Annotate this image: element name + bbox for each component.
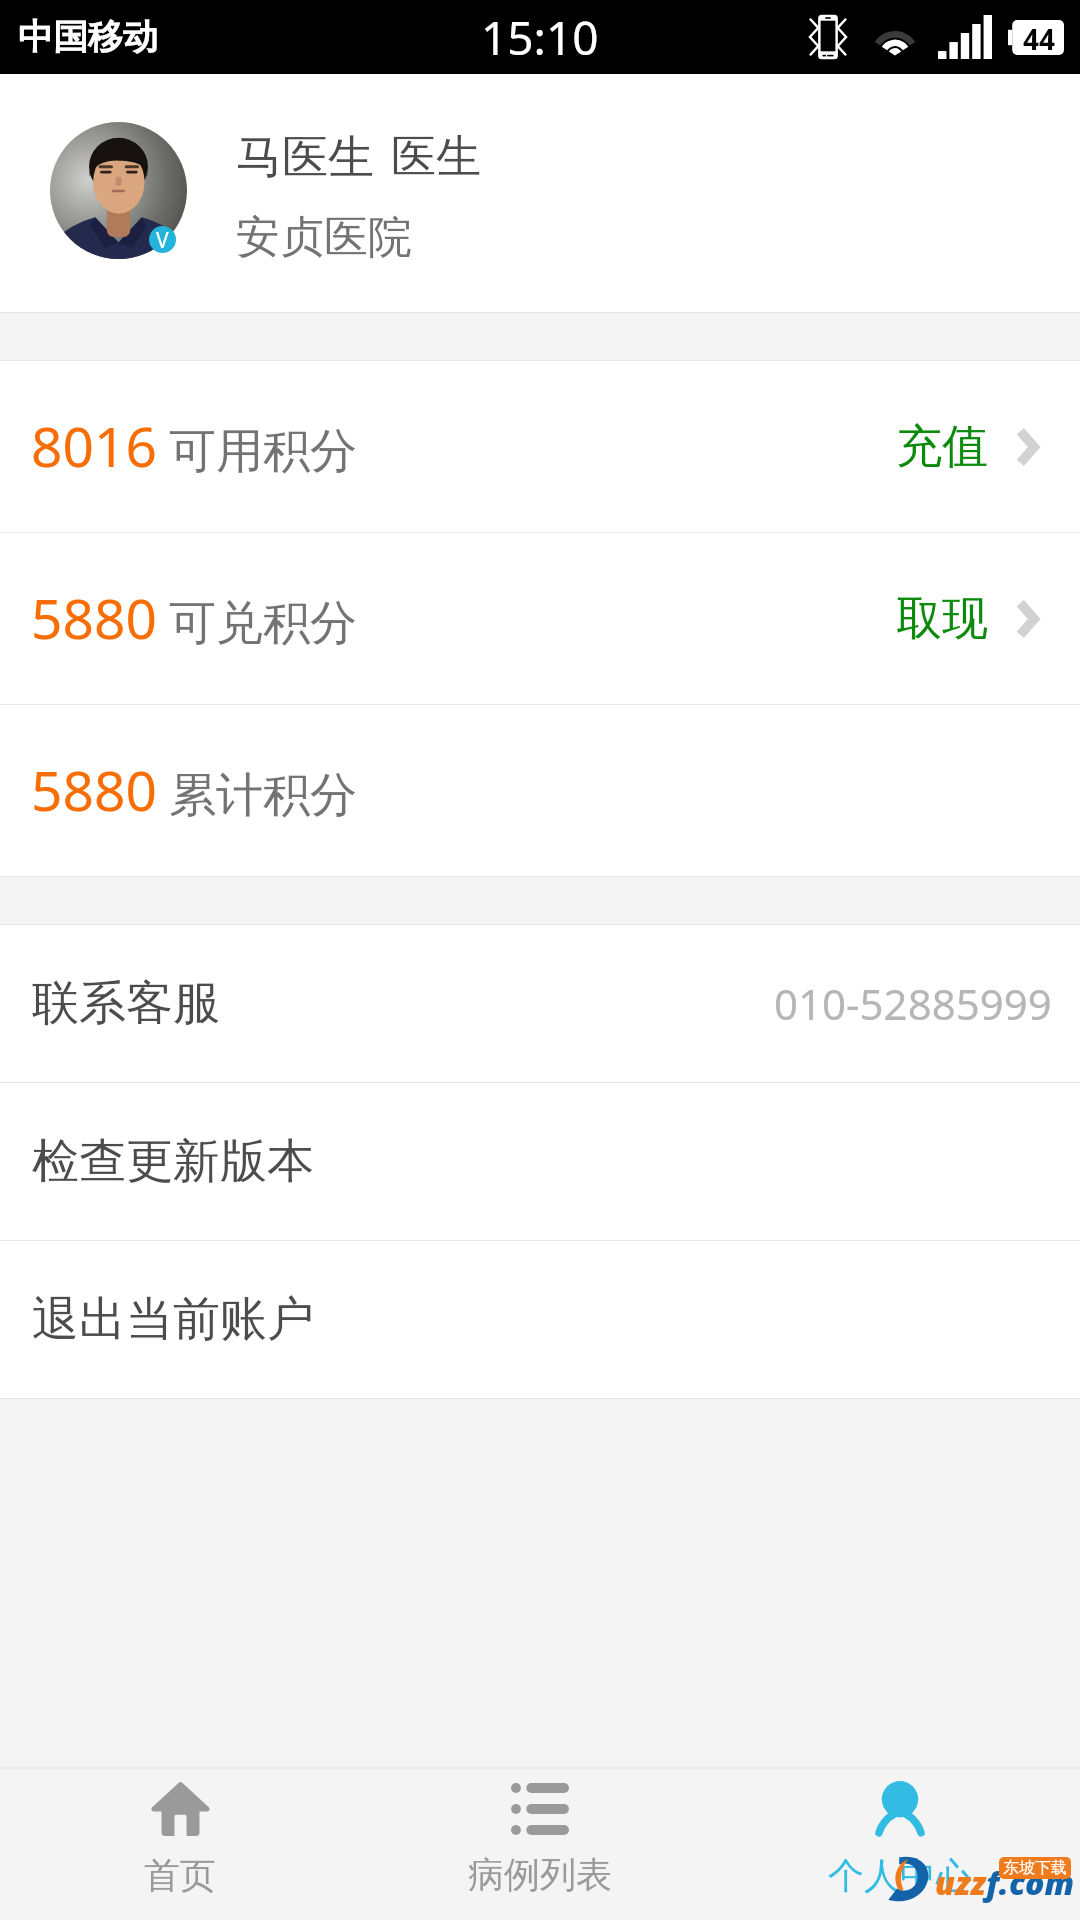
staticText: 取现 <box>896 590 988 648</box>
staticText: 病例列表 <box>468 1852 612 1897</box>
button[interactable]: 充值 <box>866 390 1080 504</box>
staticText: 医生 <box>391 129 481 186</box>
staticText: uzz <box>935 1861 986 1905</box>
button[interactable]: 5880 <box>0 533 1080 704</box>
button[interactable]: 退出当前账户 <box>0 1241 1080 1398</box>
staticText: 010-52885999 <box>774 975 1052 1032</box>
button[interactable]: 取现 <box>866 562 1080 676</box>
staticText: 充值 <box>896 418 988 476</box>
staticText: 44 <box>1023 20 1056 55</box>
staticText: 5880 <box>31 580 157 655</box>
staticText: f.com <box>986 1861 1075 1905</box>
staticText: 15:10 <box>481 6 599 69</box>
staticText: 马医生 <box>236 129 374 187</box>
staticText: 联系客服 <box>32 974 220 1033</box>
staticText: 累计积分 <box>169 766 357 825</box>
staticText: 5880 <box>31 752 157 827</box>
staticText: 可用积分 <box>169 422 357 481</box>
button[interactable]: 8016 <box>0 361 1080 532</box>
staticText: 检查更新版本 <box>32 1132 314 1191</box>
staticText: 中国移动 <box>18 15 158 59</box>
button[interactable]: 个人资料 <box>0 74 1080 312</box>
button[interactable]: 联系客服 <box>0 925 1080 1082</box>
staticText: 可兑积分 <box>169 594 357 653</box>
staticText: 东坡下载 <box>1003 1858 1067 1878</box>
staticText: 首页 <box>144 1853 216 1898</box>
staticText: 个人中心 <box>828 1853 972 1898</box>
button[interactable]: 病例列表 <box>360 1769 720 1920</box>
button[interactable]: 检查更新版本 <box>0 1083 1080 1240</box>
staticText: 退出当前账户 <box>32 1290 314 1349</box>
button[interactable]: 个人中心 <box>720 1769 1080 1920</box>
staticText: 安贞医院 <box>236 210 412 265</box>
button[interactable]: 首页 <box>0 1769 360 1920</box>
button[interactable]: 5880 <box>0 705 1080 876</box>
staticText: V <box>156 226 169 253</box>
staticText: 8016 <box>31 408 157 483</box>
